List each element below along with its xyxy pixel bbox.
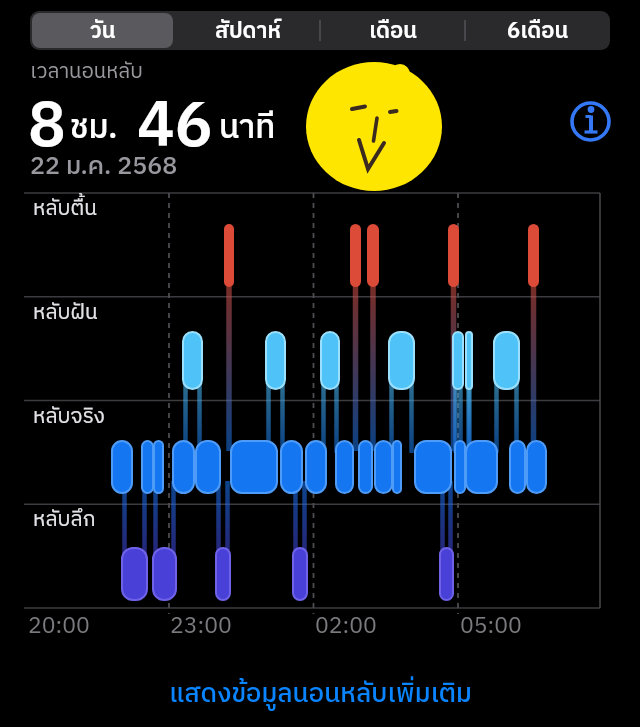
staticText: หลับลึก [33,503,96,538]
staticText: หลับจริง [33,400,105,435]
staticText: สัปดาห์ [215,13,281,49]
staticText: เวลานอนหลับ [30,55,143,89]
staticText: 23:00 [170,607,232,645]
staticText: 05:00 [460,607,522,645]
staticText: 6เดือน [507,13,569,49]
staticText: ชม. [70,101,118,155]
staticText: หลับตื้น [33,192,97,227]
button[interactable]: 6เดือน [465,11,610,50]
button[interactable]: วัน [30,11,175,50]
staticText: นาที [219,101,276,155]
button[interactable] [566,97,615,146]
staticText: 8 [28,76,66,180]
staticText: วัน [90,13,116,49]
staticText: แสดงข้อมูลนอนหลับเพิ่มเติม [169,673,472,716]
staticText: 02:00 [315,607,377,645]
button[interactable]: เดือน [320,11,465,50]
staticText: 22 ม.ค. 2568 [30,146,178,187]
staticText: เดือน [369,13,417,49]
button[interactable]: แสดงข้อมูลนอนหลับเพิ่มเติม [169,673,472,716]
staticText: 20:00 [28,607,90,645]
staticText: 46 [137,76,213,180]
button[interactable]: สัปดาห์ [175,11,320,50]
staticText: หลับฝัน [33,296,98,331]
